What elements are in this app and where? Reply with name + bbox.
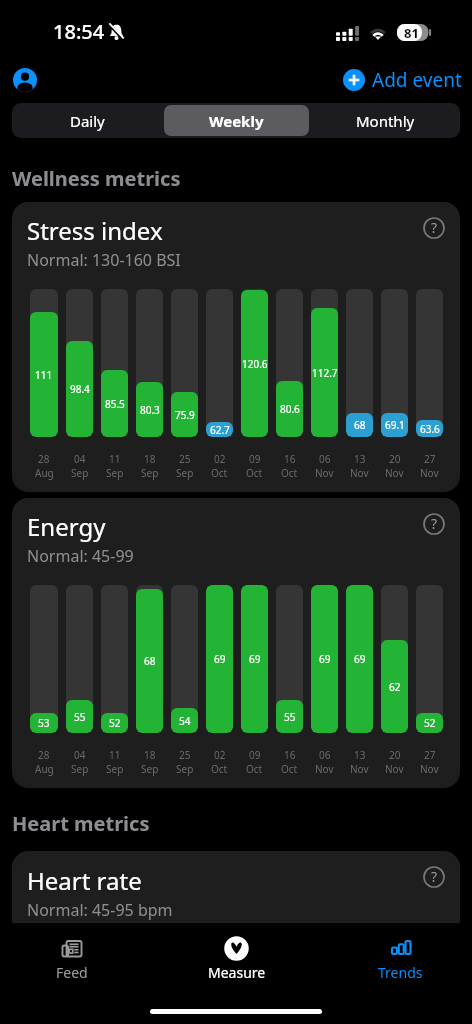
button[interactable]: Measure xyxy=(158,923,315,989)
staticText: Normal: 45-99 xyxy=(27,545,134,567)
staticText: 52 xyxy=(424,716,436,730)
staticText: Oct xyxy=(281,762,298,776)
staticText: Aug xyxy=(35,762,54,776)
staticText: 20 xyxy=(389,452,401,466)
staticText: 62.7 xyxy=(210,423,230,437)
staticText: Nov xyxy=(385,466,404,480)
staticText: 55 xyxy=(284,710,296,724)
staticText: Nov xyxy=(420,466,439,480)
staticText: 04 xyxy=(74,452,86,466)
staticText: 69 xyxy=(214,652,226,666)
staticText: Normal: 45-95 bpm xyxy=(27,899,173,921)
staticText: Nov xyxy=(385,762,404,776)
button[interactable]: Feed xyxy=(0,923,158,989)
staticText: 80.6 xyxy=(280,402,300,416)
staticText: Daily xyxy=(70,111,105,131)
staticText: Add event xyxy=(372,67,462,93)
staticText: 18 xyxy=(144,452,156,466)
staticText: 13 xyxy=(354,748,366,762)
staticText: 13 xyxy=(354,452,366,466)
staticText: 69 xyxy=(319,652,331,666)
staticText: 81 xyxy=(404,24,419,41)
button[interactable]: Stress index xyxy=(12,202,460,492)
button[interactable]: Trends xyxy=(315,923,472,989)
staticText: Nov xyxy=(350,466,369,480)
staticText: Oct xyxy=(246,762,263,776)
staticText: Nov xyxy=(420,762,439,776)
staticText: 06 xyxy=(319,748,331,762)
staticText: 11 xyxy=(109,452,121,466)
button[interactable]: Daily xyxy=(14,105,160,136)
staticText: Nov xyxy=(315,762,334,776)
staticText: Sep xyxy=(176,466,194,480)
staticText: Heart metrics xyxy=(12,810,150,837)
staticText: 63.6 xyxy=(420,422,440,436)
staticText: Oct xyxy=(246,466,263,480)
button[interactable]: Help xyxy=(423,217,445,239)
staticText: 02 xyxy=(214,452,226,466)
staticText: 09 xyxy=(249,748,261,762)
staticText: 111 xyxy=(35,368,53,382)
staticText: Monthly xyxy=(356,111,415,131)
button[interactable]: Help xyxy=(423,513,445,535)
staticText: 62 xyxy=(389,680,401,694)
staticText: 11 xyxy=(109,748,121,762)
staticText: 98.4 xyxy=(70,382,90,396)
staticText: 25 xyxy=(179,748,191,762)
staticText: 55 xyxy=(74,710,86,724)
staticText: ? xyxy=(431,514,438,533)
staticText: 75.9 xyxy=(175,408,195,422)
staticText: 18 xyxy=(144,748,156,762)
staticText: 18:54 xyxy=(53,18,105,45)
staticText: 69 xyxy=(354,652,366,666)
staticText: Sep xyxy=(106,762,124,776)
staticText: 16 xyxy=(284,748,296,762)
staticText: 68 xyxy=(354,418,366,432)
staticText: 53 xyxy=(38,716,50,730)
staticText: 52 xyxy=(109,716,121,730)
staticText: Oct xyxy=(281,466,298,480)
staticText: Normal: 130-160 BSI xyxy=(27,249,181,271)
staticText: ? xyxy=(431,867,438,886)
staticText: Trends xyxy=(378,963,423,982)
staticText: Stress index xyxy=(27,214,163,247)
button[interactable]: Energy xyxy=(12,498,460,788)
staticText: Sep xyxy=(106,466,124,480)
staticText: 85.5 xyxy=(105,397,125,411)
staticText: 69.1 xyxy=(385,418,405,432)
staticText: 04 xyxy=(74,748,86,762)
button[interactable]: Heart rate xyxy=(12,851,460,961)
staticText: Aug xyxy=(35,466,54,480)
staticText: 02 xyxy=(214,748,226,762)
button[interactable]: Weekly xyxy=(164,105,309,136)
staticText: Sep xyxy=(71,762,89,776)
button[interactable]: Help xyxy=(423,866,445,888)
staticText: 54 xyxy=(179,714,191,728)
staticText: 120.6 xyxy=(242,357,268,371)
staticText: 09 xyxy=(249,452,261,466)
staticText: 112.7 xyxy=(312,366,338,380)
staticText: 20 xyxy=(389,748,401,762)
staticText: 69 xyxy=(249,652,261,666)
button[interactable]: Add event xyxy=(343,67,462,93)
staticText: Energy xyxy=(27,510,106,543)
staticText: Oct xyxy=(211,762,228,776)
staticText: 16 xyxy=(284,452,296,466)
staticText: Sep xyxy=(141,466,159,480)
staticText: Wellness metrics xyxy=(12,165,181,192)
staticText: 80.3 xyxy=(140,403,160,417)
staticText: 25 xyxy=(179,452,191,466)
staticText: Sep xyxy=(71,466,89,480)
staticText: 27 xyxy=(424,748,436,762)
staticText: Measure xyxy=(208,963,266,982)
staticText: ? xyxy=(431,218,438,237)
staticText: Nov xyxy=(350,762,369,776)
staticText: Sep xyxy=(141,762,159,776)
staticText: 06 xyxy=(319,452,331,466)
staticText: Sep xyxy=(176,762,194,776)
staticText: Heart rate xyxy=(27,864,142,897)
button[interactable]: Profile xyxy=(9,64,41,96)
staticText: 28 xyxy=(38,748,50,762)
button[interactable]: Monthly xyxy=(313,105,458,136)
staticText: Oct xyxy=(211,466,228,480)
